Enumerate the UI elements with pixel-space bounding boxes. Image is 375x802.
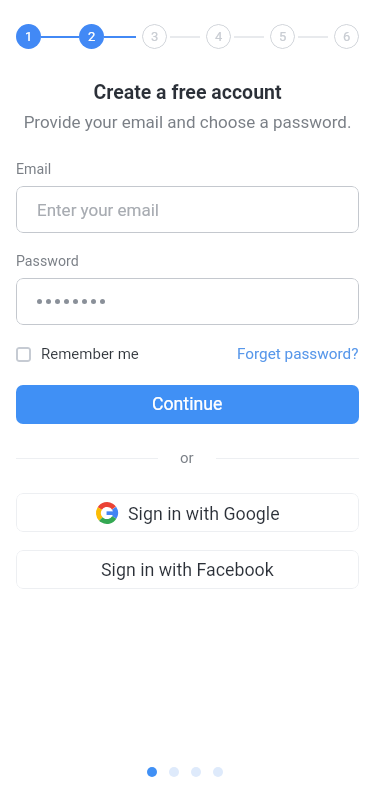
button[interactable]: Remember me [16, 345, 139, 363]
button[interactable]: Page 2 [169, 767, 179, 777]
button[interactable]: 1 [16, 24, 41, 49]
staticText: 2 [88, 29, 96, 44]
staticText: Email [16, 161, 52, 178]
button[interactable]: Sign in with Facebook [16, 550, 359, 589]
staticText: 1 [25, 29, 33, 44]
button[interactable]: 5 [270, 24, 295, 49]
button[interactable]: Forget password? [237, 345, 359, 363]
button[interactable]: 6 [334, 24, 359, 49]
button[interactable]: 4 [206, 24, 231, 49]
button[interactable]: Enter your email [16, 186, 359, 233]
button[interactable]: 3 [142, 24, 167, 49]
staticText: 6 [343, 29, 351, 44]
staticText: Password [16, 253, 79, 270]
staticText: 5 [279, 29, 287, 44]
button[interactable]: Sign in with Google [16, 493, 359, 532]
staticText: Create a free account [0, 81, 375, 104]
button[interactable] [16, 278, 359, 325]
staticText: Sign in with Google [128, 503, 280, 524]
staticText: Remember me [41, 345, 139, 363]
staticText: Forget password? [237, 345, 359, 363]
staticText: 3 [151, 29, 159, 44]
staticText: or [180, 449, 194, 467]
staticText: 4 [215, 29, 223, 44]
button[interactable]: Page 1 [147, 767, 157, 777]
button[interactable]: Page 4 [213, 767, 223, 777]
button[interactable]: 2 [79, 24, 104, 49]
staticText: Enter your email [37, 200, 160, 220]
button[interactable]: Continue [16, 385, 359, 424]
staticText: Continue [152, 394, 223, 415]
button[interactable]: Page 3 [191, 767, 201, 777]
staticText: Sign in with Facebook [101, 559, 274, 580]
staticText: Provide your email and choose a password… [0, 112, 375, 132]
